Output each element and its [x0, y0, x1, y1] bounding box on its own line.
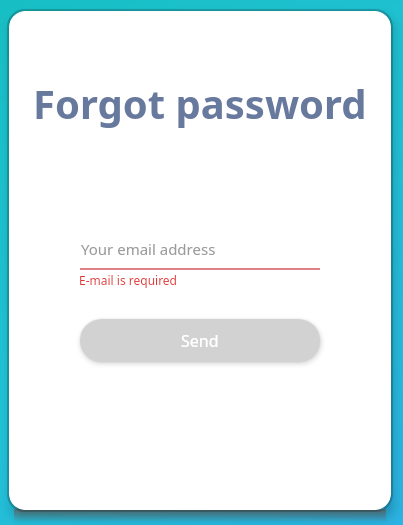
- staticText: Forgot password: [33, 76, 367, 130]
- staticText: E-mail is required: [79, 272, 178, 288]
- staticText: Send: [181, 330, 219, 352]
- staticText: Your email address: [81, 239, 216, 259]
- button[interactable]: Send: [80, 319, 320, 362]
